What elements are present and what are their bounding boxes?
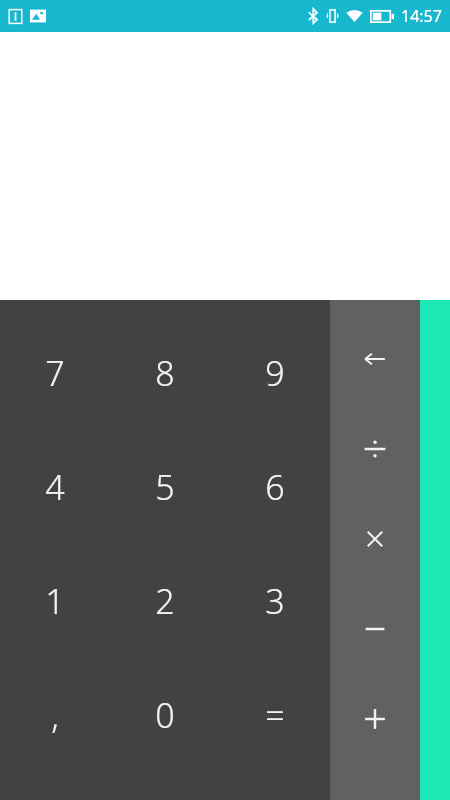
button[interactable]: 7: [0, 316, 110, 430]
button[interactable]: 3: [220, 544, 330, 658]
button[interactable]: 9: [220, 316, 330, 430]
staticText: 6: [265, 464, 285, 510]
staticText: 0: [155, 692, 175, 738]
staticText: 7: [45, 350, 65, 396]
staticText: =: [265, 692, 285, 738]
staticText: 14:57: [401, 5, 442, 27]
button[interactable]: 0: [110, 658, 220, 772]
button[interactable]: =: [220, 658, 330, 772]
button[interactable]: Subtract: [330, 584, 420, 674]
button[interactable]: 4: [0, 430, 110, 544]
button[interactable]: ,: [0, 658, 110, 772]
staticText: 3: [265, 578, 285, 624]
button[interactable]: 1: [0, 544, 110, 658]
staticText: 1: [45, 578, 65, 624]
button[interactable]: Add: [330, 674, 420, 764]
button[interactable]: 2: [110, 544, 220, 658]
staticText: 8: [155, 350, 175, 396]
staticText: 5: [155, 464, 175, 510]
staticText: 2: [155, 578, 175, 624]
button[interactable]: 6: [220, 430, 330, 544]
button[interactable]: 5: [110, 430, 220, 544]
button[interactable]: Multiply: [330, 494, 420, 584]
button[interactable]: Backspace: [330, 314, 420, 404]
staticText: 4: [45, 464, 65, 510]
staticText: ,: [51, 692, 59, 738]
button[interactable]: Divide: [330, 404, 420, 494]
staticText: 9: [265, 350, 285, 396]
button[interactable]: 8: [110, 316, 220, 430]
